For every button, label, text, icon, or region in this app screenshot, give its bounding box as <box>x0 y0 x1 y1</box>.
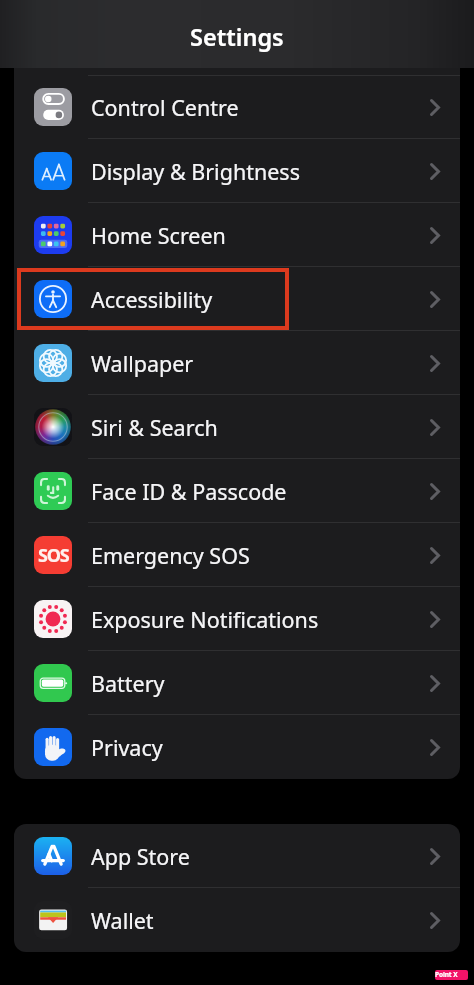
staticText: Settings <box>190 21 284 53</box>
staticText: Accessibility <box>91 285 213 314</box>
staticText: Privacy <box>91 733 163 762</box>
staticText: Point X Ule <box>435 970 468 980</box>
staticText: Wallpaper <box>91 349 194 378</box>
button[interactable]: Display & Brightness <box>14 139 460 203</box>
button[interactable]: Face ID & Passcode <box>14 459 460 523</box>
button[interactable]: Wallet <box>14 888 460 952</box>
button[interactable]: Wallpaper <box>14 331 460 395</box>
staticText: Exposure Notifications <box>91 605 319 634</box>
button[interactable]: Exposure Notifications <box>14 587 460 651</box>
button[interactable]: Battery <box>14 651 460 715</box>
staticText: Display & Brightness <box>91 157 300 186</box>
staticText: Face ID & Passcode <box>91 477 287 506</box>
button[interactable]: Home Screen <box>14 203 460 267</box>
button[interactable]: App Store <box>14 824 460 888</box>
button[interactable]: Siri & Search <box>14 395 460 459</box>
button[interactable]: Privacy <box>14 715 460 779</box>
button[interactable]: Accessibility <box>14 267 460 331</box>
staticText: Emergency SOS <box>91 541 250 570</box>
staticText: Home Screen <box>91 221 226 250</box>
staticText: Siri & Search <box>91 413 218 442</box>
staticText: Control Centre <box>91 93 239 122</box>
staticText: SOS <box>38 543 69 568</box>
staticText: Battery <box>91 669 165 698</box>
staticText: Wallet <box>91 906 154 935</box>
button[interactable]: SOS <box>14 523 460 587</box>
button[interactable]: Control Centre <box>14 75 460 139</box>
staticText: App Store <box>91 842 190 871</box>
